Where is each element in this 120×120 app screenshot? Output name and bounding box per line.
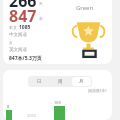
staticText: 8 bbox=[7, 104, 10, 109]
staticText: Green bbox=[76, 4, 94, 12]
staticText: 847 bbox=[9, 5, 37, 27]
staticText: 169 bbox=[54, 100, 61, 105]
staticText: 阅读量(本) bbox=[88, 88, 107, 93]
button[interactable]: 月 bbox=[72, 77, 91, 86]
staticText: 天 bbox=[39, 1, 43, 6]
staticText: 周 bbox=[58, 79, 63, 85]
staticText: 2023 bbox=[27, 113, 37, 118]
staticText: 英文阅读 bbox=[9, 47, 27, 53]
staticText: 页 bbox=[9, 41, 13, 45]
staticText: 1085 bbox=[19, 24, 31, 31]
staticText: 266 bbox=[9, 0, 37, 12]
staticText: 中文阅读 bbox=[9, 32, 27, 38]
staticText: 847本/5.3万页 bbox=[9, 55, 42, 62]
button[interactable]: 日 bbox=[29, 77, 49, 86]
staticText: 月 bbox=[79, 79, 84, 85]
staticText: 日 bbox=[37, 79, 42, 85]
other: Trophy bbox=[72, 21, 105, 60]
staticText: 本文 bbox=[9, 25, 17, 30]
button[interactable]: 周 bbox=[51, 77, 70, 86]
staticText: 本 bbox=[39, 16, 43, 21]
